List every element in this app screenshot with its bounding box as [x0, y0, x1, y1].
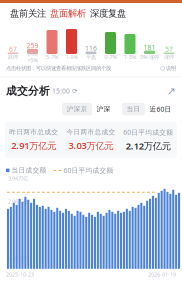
staticText: 说明	[166, 65, 176, 72]
staticText: ↗	[166, 85, 175, 97]
button[interactable]: 盘前关注	[8, 6, 48, 21]
staticText: 成交分析	[6, 84, 50, 97]
staticText: 2025-10-23	[6, 271, 34, 278]
staticText: 181	[143, 43, 155, 52]
button[interactable]: 说明	[160, 65, 176, 72]
staticText: 点击柱状图，可以快速查看相应涨跌区间的个股	[6, 65, 111, 72]
staticText: 1-0%	[65, 53, 77, 61]
button[interactable]: 深度复盘	[88, 6, 128, 21]
staticText: 当日成交额	[9, 166, 46, 174]
staticText: 当日	[126, 105, 140, 113]
staticText: 1.98万亿	[8, 255, 28, 262]
staticText: 67	[9, 45, 17, 54]
staticText: 2026-01-19	[148, 271, 176, 278]
staticText: 60日平均成交额	[123, 128, 173, 137]
button[interactable]: 当日	[122, 103, 145, 115]
staticText: 沪深	[96, 105, 110, 113]
button[interactable]: 沪深	[92, 103, 115, 115]
staticText: 盘面解析	[50, 8, 86, 19]
staticText: 近60日	[149, 105, 171, 114]
staticText: 3.03万亿元	[68, 139, 113, 152]
staticText: 15:00	[50, 86, 70, 95]
staticText: 116	[85, 44, 97, 53]
staticText: 涨停	[164, 54, 174, 60]
staticText: 今日两市总成交	[66, 128, 115, 136]
staticText: ⟳	[70, 87, 78, 95]
button[interactable]: 盘面解析	[48, 6, 88, 21]
staticText: 2.91万亿元	[11, 139, 56, 152]
staticText: 0-7%	[104, 53, 116, 61]
staticText: 深度复盘	[90, 8, 126, 19]
staticText: 跌幅>5%	[27, 50, 37, 64]
staticText: 60日平均成交额	[61, 166, 113, 175]
button[interactable]: Share	[166, 86, 176, 96]
staticText: 平盘	[86, 54, 96, 60]
staticText: 57	[165, 45, 173, 54]
staticText: 2.12万亿元	[126, 140, 171, 152]
staticText: 259	[26, 41, 38, 50]
staticText: 盘前关注	[10, 8, 46, 19]
staticText: 跌停	[8, 54, 18, 60]
staticText: 2.96万亿	[8, 198, 28, 205]
button[interactable]: 近60日	[145, 102, 176, 116]
staticText: 5-7%	[46, 53, 58, 61]
staticText: 1-5%	[124, 53, 136, 61]
staticText: 3.94万亿	[8, 175, 28, 182]
staticText: 沪深京	[66, 105, 87, 113]
staticText: 5%-涨停	[140, 53, 159, 61]
staticText: 昨日两市总成交	[9, 128, 58, 136]
button[interactable]: 沪深京	[62, 103, 92, 115]
